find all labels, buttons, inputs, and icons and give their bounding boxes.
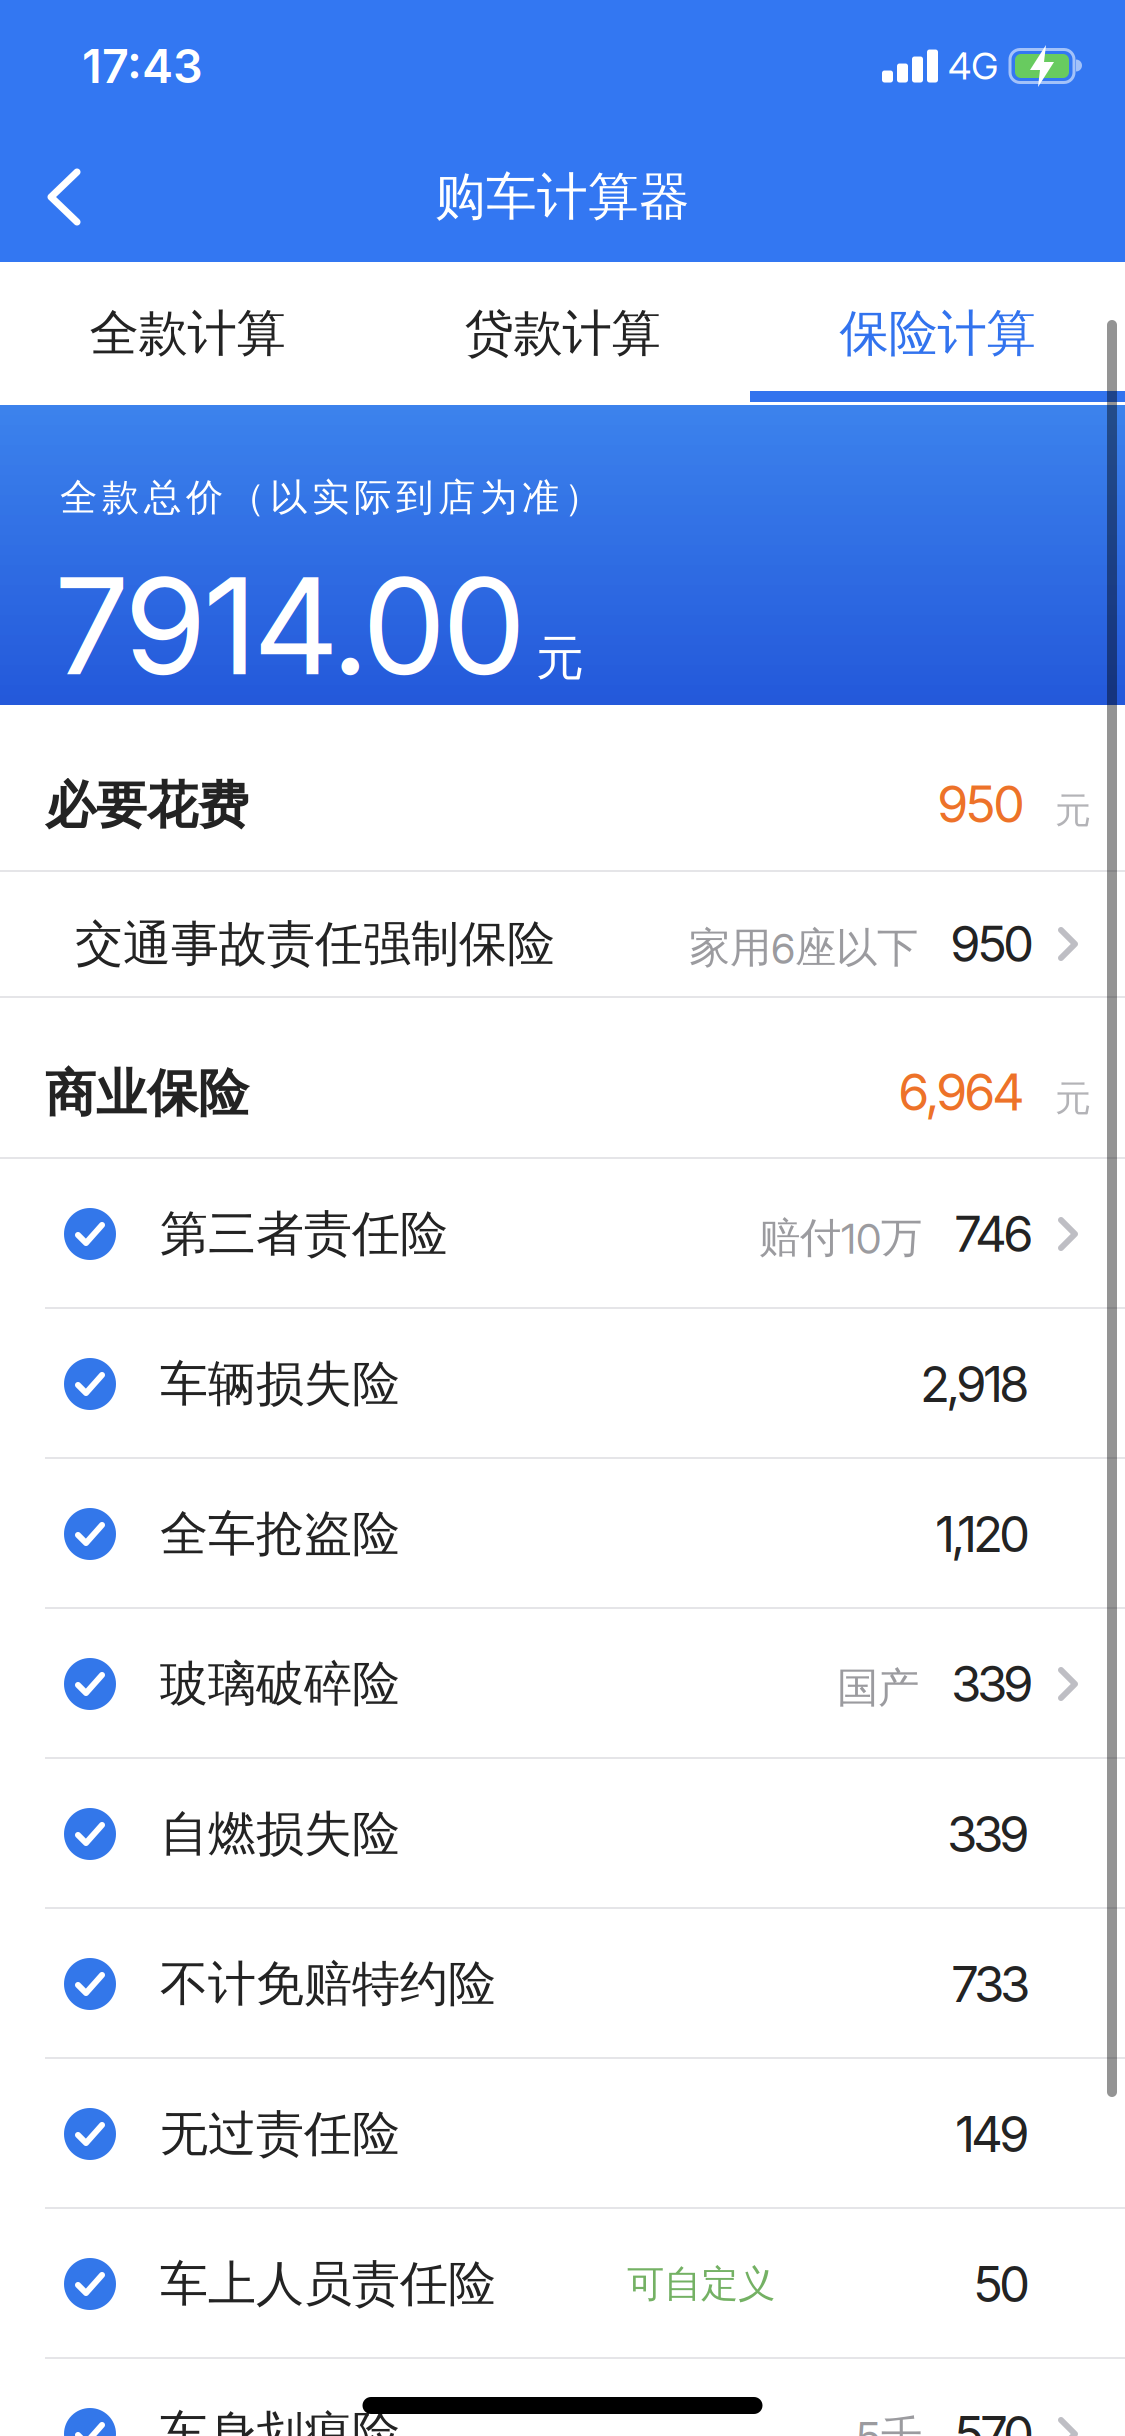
button[interactable]: 贷款计算 bbox=[375, 262, 750, 405]
staticText: 全款计算 bbox=[89, 302, 285, 364]
staticText: 必要花费 bbox=[45, 774, 249, 837]
staticText: 车辆损失险 bbox=[160, 1354, 400, 1414]
button[interactable]: 保险计算 bbox=[750, 262, 1125, 405]
staticText: 购车计算器 bbox=[435, 165, 690, 229]
button[interactable]: 不计免赔特约险 bbox=[0, 1909, 1125, 2059]
staticText: 商业保险 bbox=[45, 1062, 249, 1125]
staticText: 自燃损失险 bbox=[160, 1804, 400, 1864]
staticText: 车上人员责任险 bbox=[160, 2254, 496, 2314]
button[interactable]: 交通事故责任强制保险 bbox=[0, 872, 1125, 996]
staticText: 7914.00 bbox=[54, 545, 526, 706]
button[interactable]: 第三者责任险 bbox=[0, 1159, 1125, 1309]
staticText: 元 bbox=[536, 628, 584, 688]
staticText: 无过责任险 bbox=[160, 2104, 400, 2164]
button[interactable]: 车身划痕险 bbox=[0, 2359, 1125, 2436]
staticText: 全款总价（以实际到店为准） bbox=[60, 474, 601, 521]
button[interactable]: Back bbox=[0, 148, 82, 246]
staticText: 第三者责任险 bbox=[160, 1204, 448, 1264]
staticText: 贷款计算 bbox=[464, 302, 660, 364]
staticText: 元 bbox=[1055, 788, 1091, 833]
staticText: 赔付10万 bbox=[759, 1212, 922, 1264]
staticText: 不计免赔特约险 bbox=[160, 1954, 496, 2014]
staticText: 570 bbox=[954, 2404, 1034, 2436]
staticText: 交通事故责任强制保险 bbox=[75, 914, 555, 974]
staticText: 50 bbox=[973, 2254, 1030, 2314]
staticText: 339 bbox=[951, 1654, 1034, 1714]
button[interactable]: 自燃损失险 bbox=[0, 1759, 1125, 1909]
button[interactable]: 车辆损失险 bbox=[0, 1309, 1125, 1459]
staticText: 2,918 bbox=[920, 1354, 1030, 1414]
staticText: 可自定义 bbox=[627, 2260, 775, 2307]
staticText: 4G bbox=[948, 43, 998, 89]
staticText: 国产 bbox=[837, 1662, 919, 1714]
button[interactable]: 玻璃破碎险 bbox=[0, 1609, 1125, 1759]
staticText: 17:43 bbox=[82, 38, 203, 94]
staticText: 950 bbox=[937, 773, 1025, 835]
staticText: 339 bbox=[947, 1804, 1030, 1864]
button[interactable]: 车上人员责任险 bbox=[0, 2209, 1125, 2359]
button[interactable]: 全车抢盗险 bbox=[0, 1459, 1125, 1609]
staticText: 元 bbox=[1055, 1076, 1091, 1121]
staticText: 149 bbox=[955, 2104, 1030, 2164]
staticText: 全车抢盗险 bbox=[160, 1504, 400, 1564]
staticText: 6,964 bbox=[898, 1061, 1025, 1123]
button[interactable]: 全款计算 bbox=[0, 262, 375, 405]
staticText: 746 bbox=[954, 1204, 1034, 1264]
staticText: 1,120 bbox=[935, 1504, 1030, 1564]
staticText: 733 bbox=[951, 1954, 1030, 2014]
staticText: 玻璃破碎险 bbox=[160, 1654, 400, 1714]
staticText: 家用6座以下 bbox=[689, 922, 918, 974]
staticText: 保险计算 bbox=[839, 302, 1035, 364]
staticText: 950 bbox=[950, 914, 1034, 974]
staticText: 5千 bbox=[857, 2410, 922, 2436]
staticText: 车身划痕险 bbox=[160, 2404, 400, 2436]
button[interactable]: 无过责任险 bbox=[0, 2059, 1125, 2209]
